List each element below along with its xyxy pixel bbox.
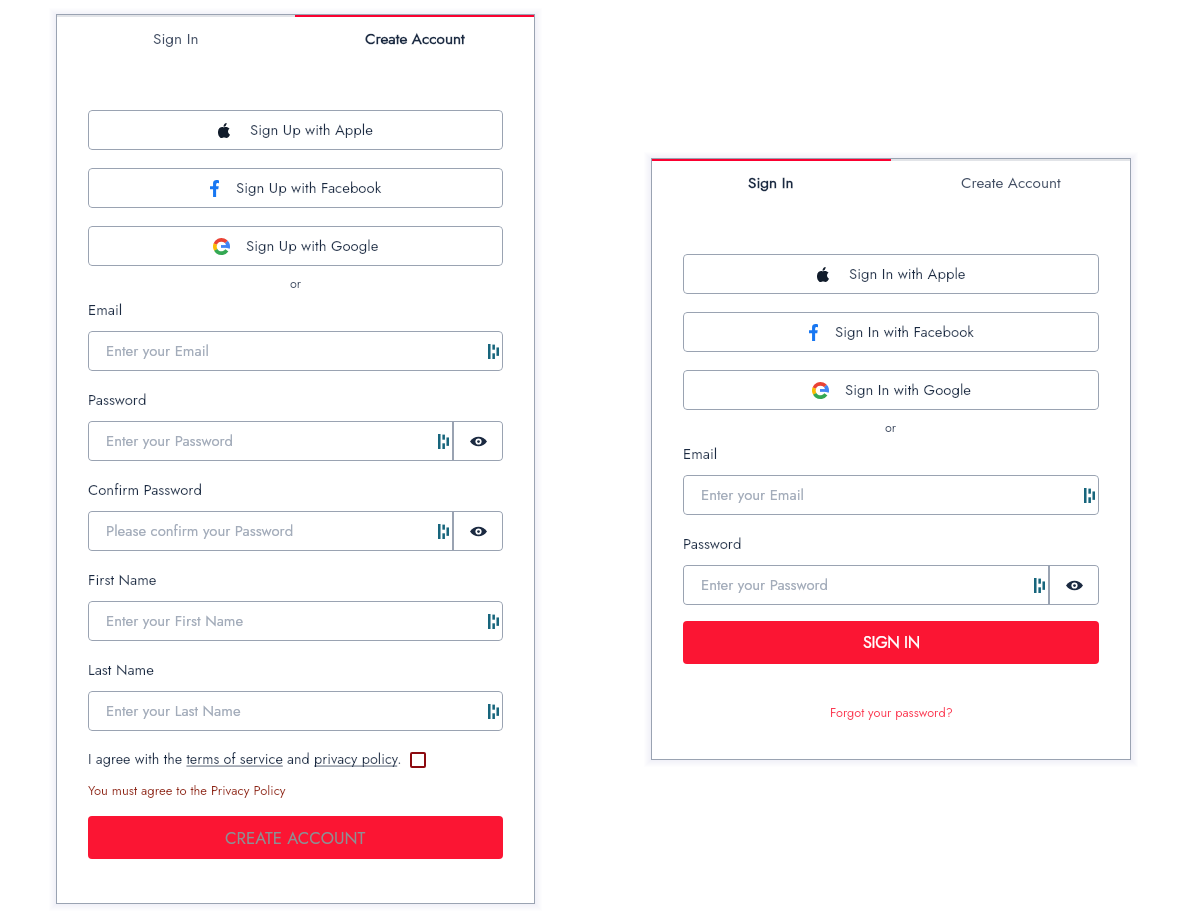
button[interactable]: Create Account <box>295 17 535 60</box>
staticText: Enter your Password <box>106 430 438 452</box>
staticText: Email <box>683 443 718 465</box>
staticText: First Name <box>88 569 157 591</box>
staticText: or <box>290 275 302 293</box>
staticText: Create Account <box>961 172 1061 194</box>
button[interactable]: Please confirm your Password <box>88 511 453 551</box>
staticText: or <box>885 419 897 437</box>
staticText: Sign Up with Apple <box>250 119 373 141</box>
button[interactable]: Enter your First Name <box>88 601 503 641</box>
button[interactable]: Sign In <box>651 161 891 204</box>
staticText: Sign In <box>153 28 199 50</box>
staticText: Sign In with Apple <box>849 263 966 285</box>
staticText: Enter your Password <box>701 574 1034 596</box>
button[interactable]: Sign In with Facebook <box>683 312 1099 352</box>
staticText: Password <box>683 533 742 555</box>
button[interactable]: Sign In <box>56 17 295 60</box>
staticText: I agree with the terms of service and pr… <box>88 749 402 770</box>
staticText: Create Account <box>365 28 465 50</box>
button[interactable]: Sign Up with Facebook <box>88 168 503 208</box>
button[interactable]: Enter your Password <box>88 421 453 461</box>
staticText: CREATE ACCOUNT <box>225 826 366 850</box>
button[interactable]: Enter your Password <box>683 565 1049 605</box>
staticText: Enter your Email <box>106 340 488 362</box>
staticText: Sign Up with Facebook <box>236 177 382 199</box>
button[interactable]: Agree to terms and privacy policy <box>410 752 426 768</box>
button[interactable]: Show password <box>453 421 503 461</box>
staticText: You must agree to the Privacy Policy <box>88 781 286 800</box>
staticText: Sign Up with Google <box>246 235 379 257</box>
staticText: SIGN IN <box>863 631 920 654</box>
staticText: Please confirm your Password <box>106 520 438 542</box>
button[interactable]: Show password <box>453 511 503 551</box>
staticText: Email <box>88 299 123 321</box>
staticText: Password <box>88 389 147 411</box>
button[interactable]: Forgot your password? <box>824 697 959 727</box>
button[interactable]: Sign Up with Apple <box>88 110 503 150</box>
button[interactable]: CREATE ACCOUNT <box>88 816 503 859</box>
staticText: Sign In with Google <box>845 379 971 401</box>
button[interactable]: Sign In with Apple <box>683 254 1099 294</box>
staticText: Enter your First Name <box>106 610 488 632</box>
button[interactable]: Enter your Email <box>88 331 503 371</box>
button[interactable]: SIGN IN <box>683 621 1099 664</box>
button[interactable]: Show password <box>1049 565 1099 605</box>
button[interactable]: Enter your Email <box>683 475 1099 515</box>
staticText: Last Name <box>88 659 154 681</box>
button[interactable]: Create Account <box>891 161 1131 204</box>
staticText: Enter your Email <box>701 484 1084 506</box>
staticText: Enter your Last Name <box>106 700 488 722</box>
staticText: Forgot your password? <box>830 703 953 721</box>
button[interactable]: Enter your Last Name <box>88 691 503 731</box>
staticText: Sign In with Facebook <box>835 321 974 343</box>
staticText: Sign In <box>748 172 794 194</box>
button[interactable]: Sign Up with Google <box>88 226 503 266</box>
button[interactable]: Sign In with Google <box>683 370 1099 410</box>
staticText: Confirm Password <box>88 479 202 501</box>
